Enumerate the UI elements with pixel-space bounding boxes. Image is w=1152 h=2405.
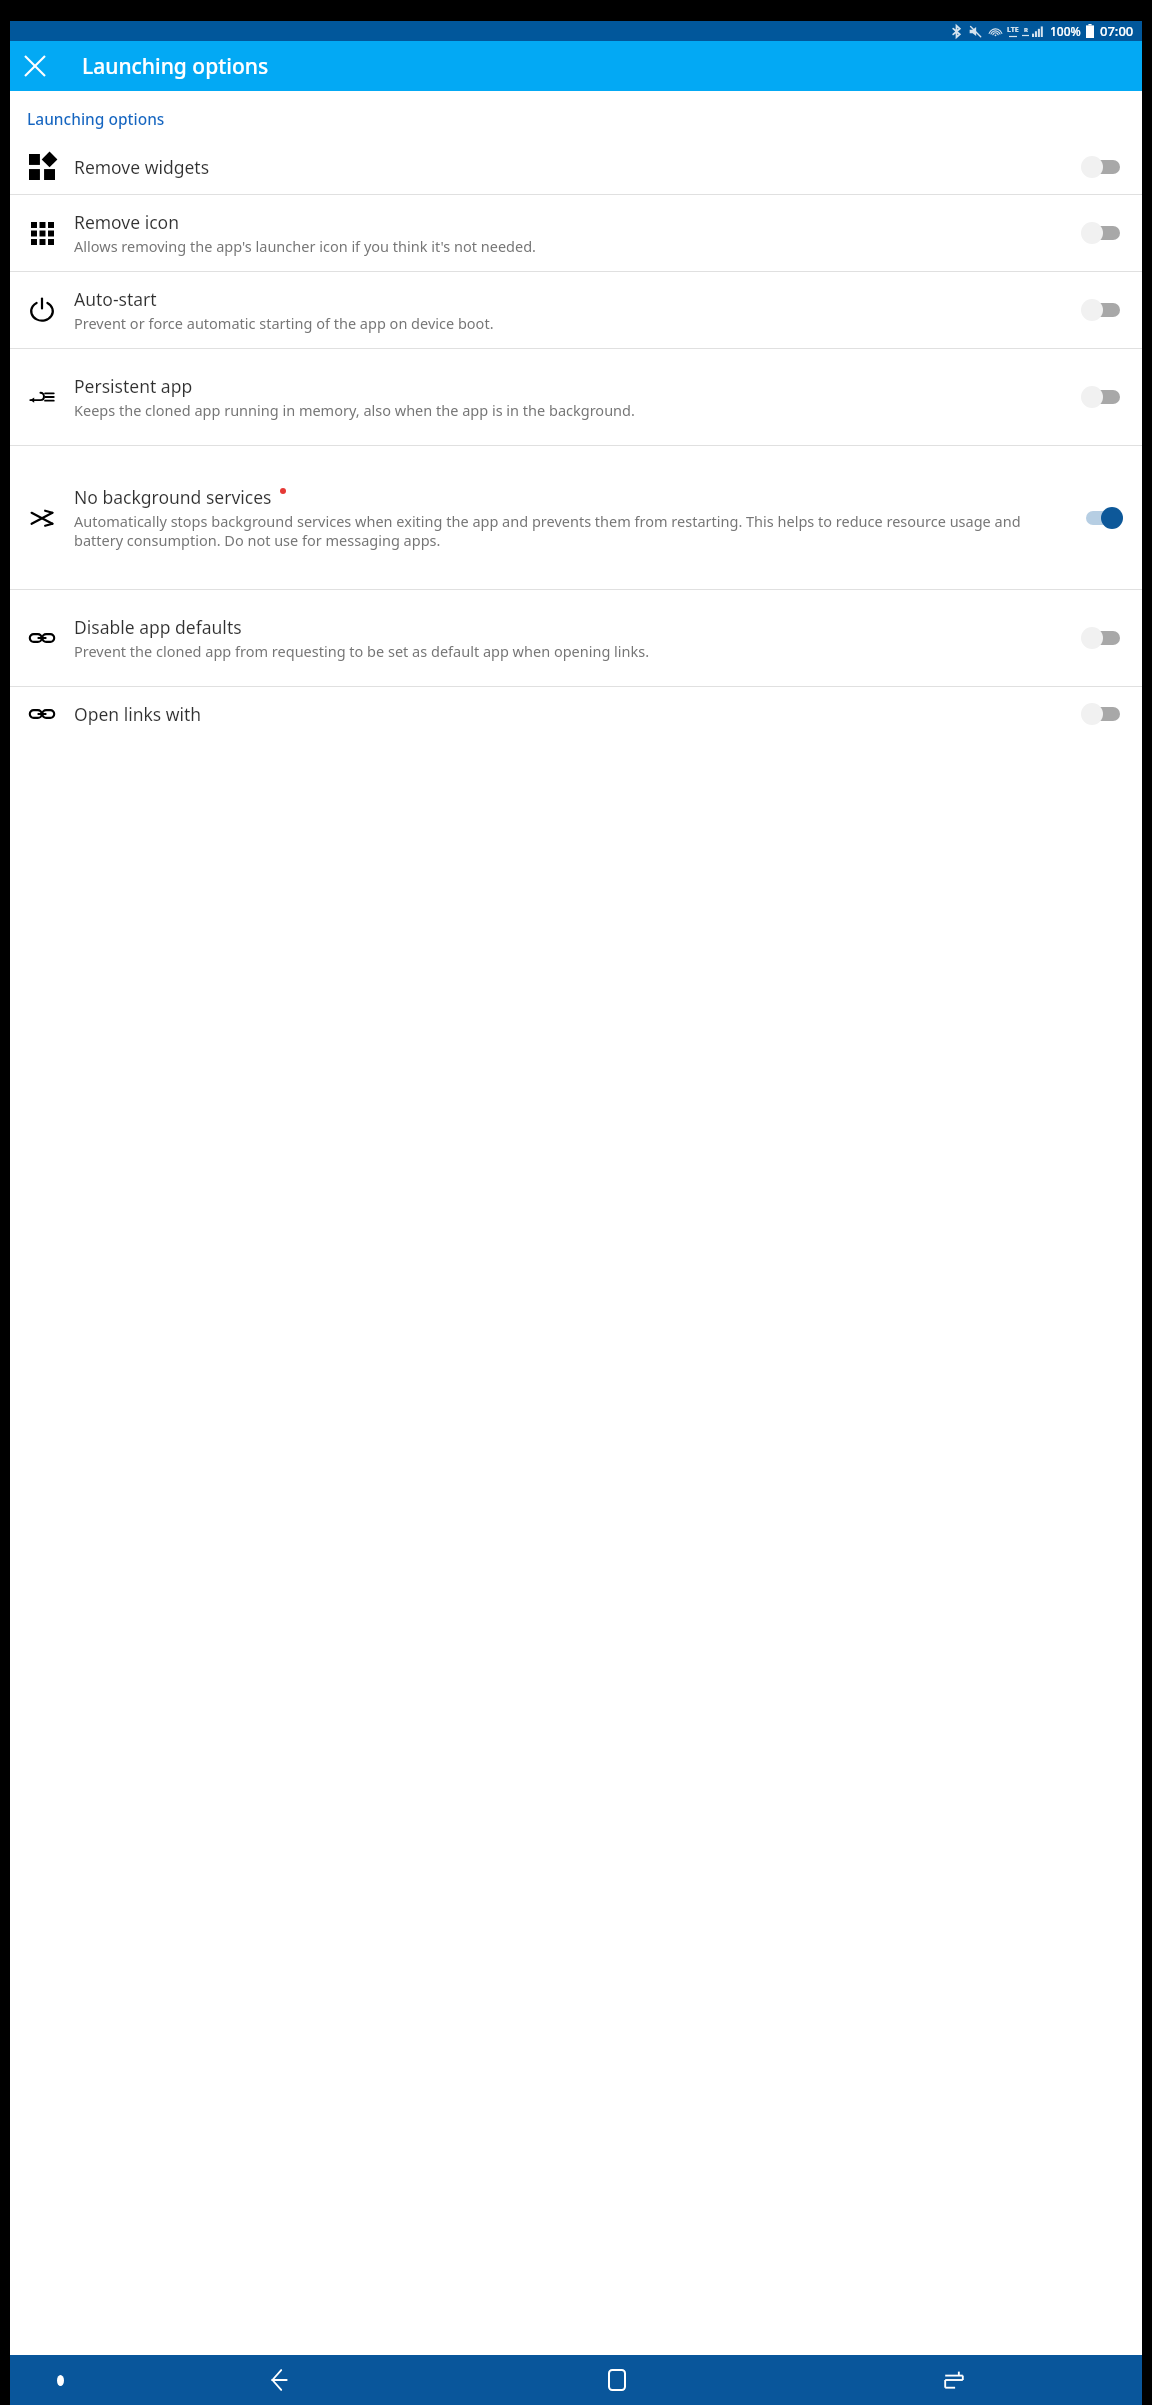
button[interactable]: No background services <box>10 446 1142 589</box>
button[interactable]: Remove widgets <box>1064 140 1142 194</box>
staticText: R <box>1024 26 1028 34</box>
staticText: Allows removing the app's launcher icon … <box>74 236 536 256</box>
staticText: LTE <box>1007 25 1019 35</box>
staticText: Auto-start <box>74 287 157 311</box>
staticText: No background services <box>74 485 272 509</box>
button[interactable]: Back <box>110 2355 448 2405</box>
button[interactable]: Remove icon <box>1064 195 1142 271</box>
staticText: Prevent or force automatic starting of t… <box>74 313 494 333</box>
button[interactable]: Persistent app <box>10 349 1142 445</box>
button[interactable]: Disable app defaults <box>1064 590 1142 686</box>
button[interactable]: Remove icon <box>10 195 1142 271</box>
staticText: Launching options <box>82 52 269 81</box>
staticText: Automatically stops background services … <box>74 511 1056 550</box>
staticText: Remove icon <box>74 210 179 234</box>
staticText: Keeps the cloned app running in memory, … <box>74 400 635 420</box>
button[interactable]: Close <box>10 41 60 91</box>
button[interactable]: Assistant <box>10 2355 110 2405</box>
button[interactable]: Open links with <box>10 687 1142 741</box>
button[interactable]: Home <box>448 2355 785 2405</box>
staticText: Persistent app <box>74 374 193 398</box>
button[interactable]: Disable app defaults <box>10 590 1142 686</box>
button[interactable]: Auto-start <box>1064 272 1142 348</box>
staticText: Disable app defaults <box>74 615 242 639</box>
staticText: Remove widgets <box>74 155 210 179</box>
staticText: Prevent the cloned app from requesting t… <box>74 641 650 661</box>
staticText: 100% <box>1050 23 1081 39</box>
staticText: Launching options <box>27 108 165 129</box>
staticText: Open links with <box>74 702 202 726</box>
button[interactable]: Auto-start <box>10 272 1142 348</box>
button[interactable]: Open links with <box>1064 687 1142 741</box>
button[interactable]: No background services <box>1064 446 1142 589</box>
button[interactable]: Persistent app <box>1064 349 1142 445</box>
button[interactable]: Recents <box>785 2355 1122 2405</box>
button[interactable]: Remove widgets <box>10 140 1142 194</box>
staticText: 07:00 <box>1100 22 1134 40</box>
